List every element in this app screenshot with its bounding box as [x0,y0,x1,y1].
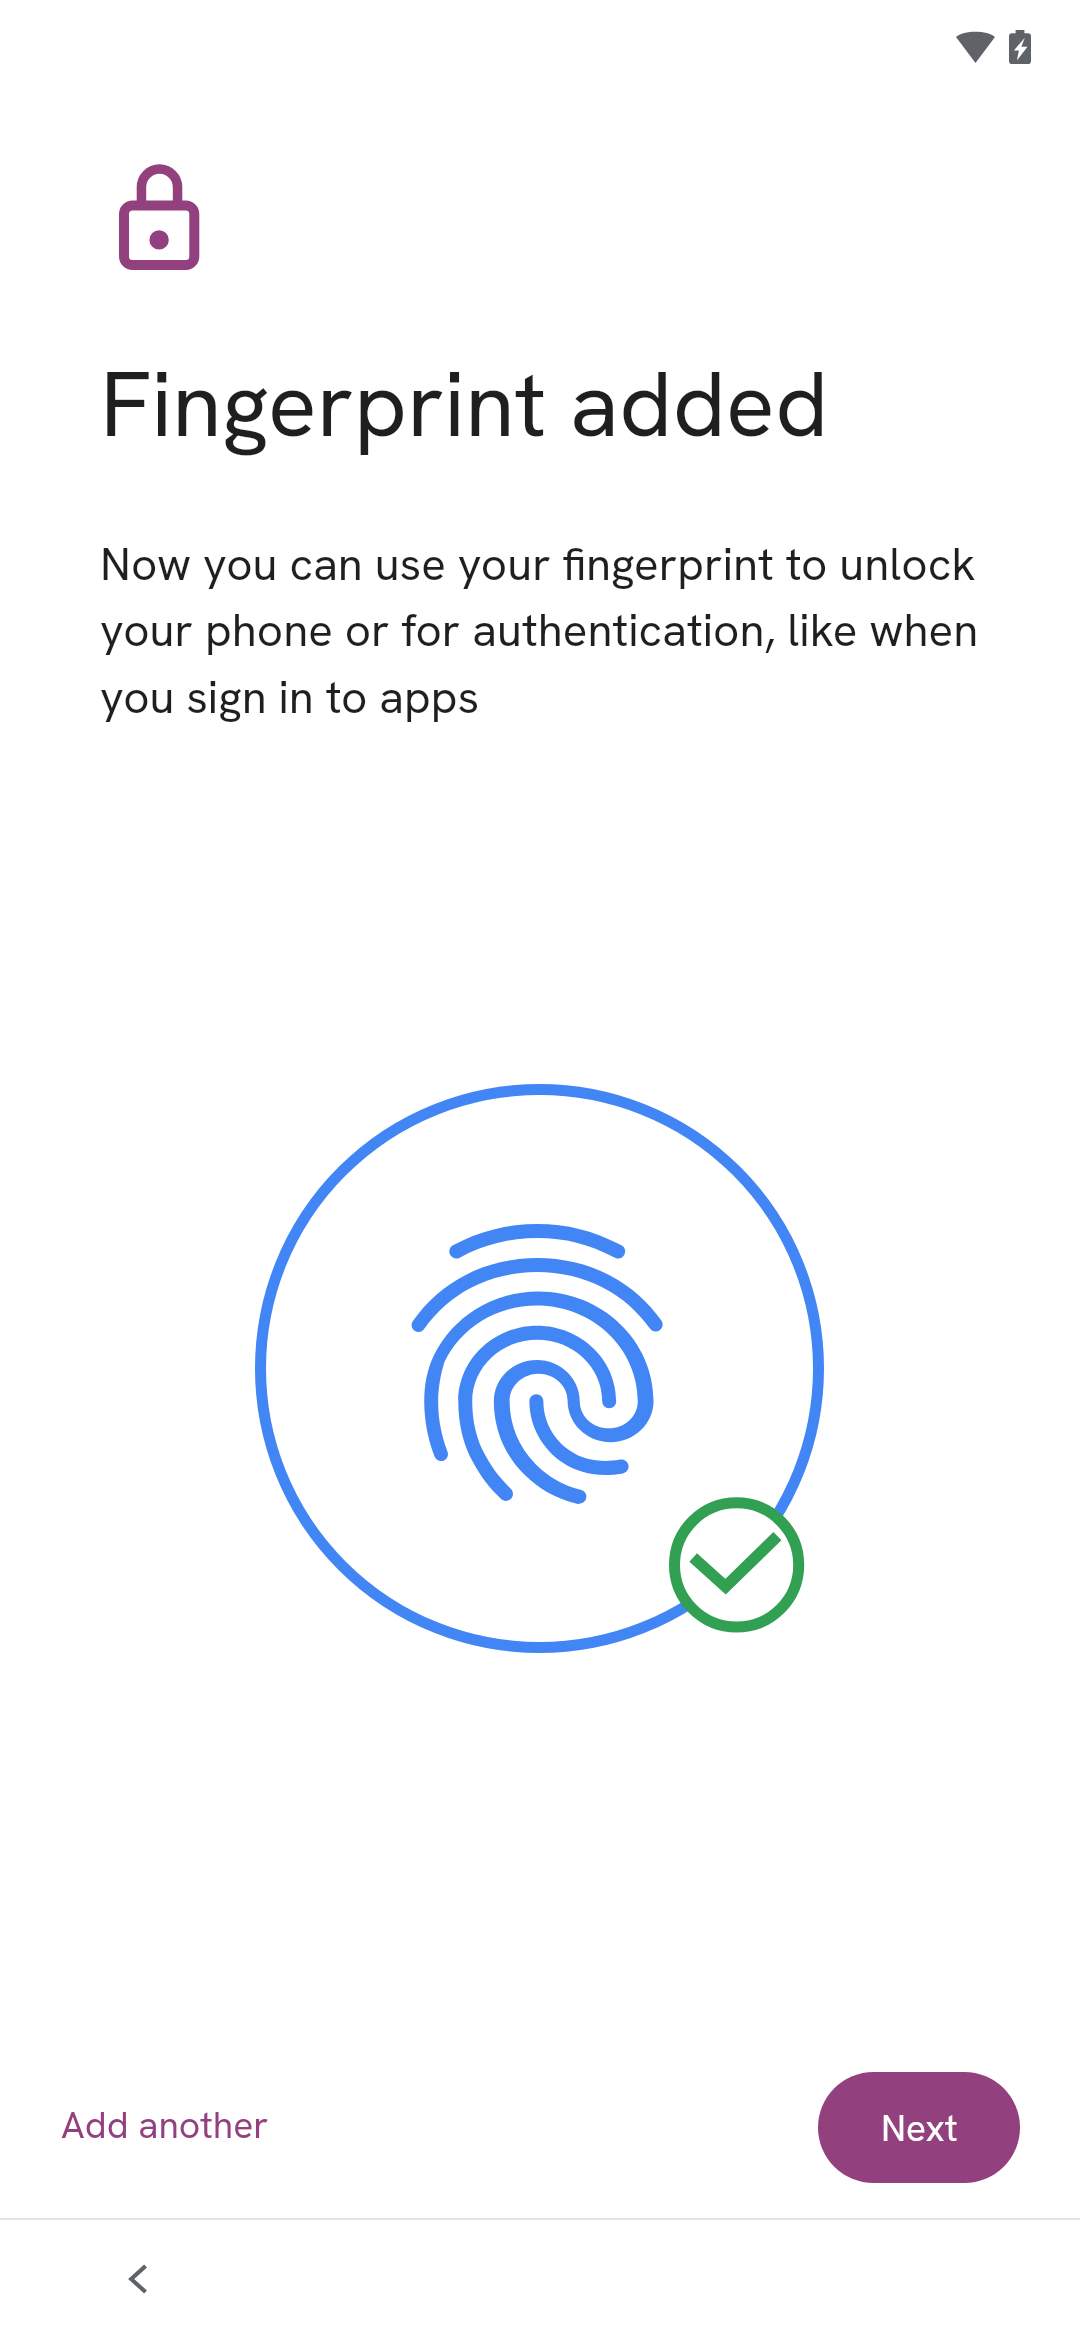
button[interactable]: Add another [31,2087,299,2164]
button[interactable]: Back [98,2239,178,2319]
staticText: Now you can use your fingerprint to unlo… [100,534,1020,727]
staticText: Next [881,2104,958,2152]
staticText: Add another [61,2101,269,2150]
staticText: Fingerprint added [100,345,829,464]
button[interactable]: Next [818,2072,1020,2183]
